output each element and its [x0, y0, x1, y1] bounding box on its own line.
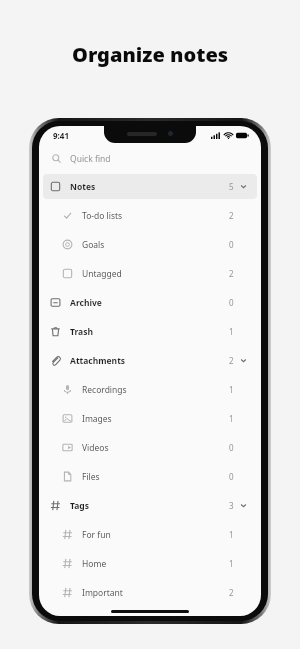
staticText: Archive [70, 297, 102, 309]
button[interactable]: Tags [43, 493, 257, 518]
staticText: 2 [229, 268, 234, 279]
staticText: Attachments [70, 355, 126, 367]
button[interactable]: Recordings [43, 377, 257, 402]
staticText: Important [82, 587, 123, 599]
staticText: Home [82, 558, 107, 570]
staticText: 1 [229, 558, 234, 569]
staticText: 0 [229, 297, 234, 308]
staticText: Images [82, 413, 112, 425]
staticText: 1 [229, 384, 234, 395]
staticText: 5 [229, 181, 234, 192]
staticText: Organize notes [72, 41, 229, 68]
staticText: 1 [229, 529, 234, 540]
button[interactable]: Untagged [43, 261, 257, 286]
button[interactable]: Attachments [43, 348, 257, 373]
button[interactable]: Important [43, 580, 257, 605]
staticText: 1 [229, 326, 234, 337]
button[interactable]: Trash [43, 319, 257, 344]
button[interactable]: Videos [43, 435, 257, 460]
staticText: 2 [229, 210, 234, 221]
staticText: To-do lists [82, 210, 123, 222]
button[interactable]: Images [43, 406, 257, 431]
staticText: Quick find [70, 153, 111, 165]
button[interactable]: Archive [43, 290, 257, 315]
staticText: Goals [82, 239, 105, 251]
staticText: 3 [229, 500, 234, 511]
button[interactable]: To-do lists [43, 203, 257, 228]
staticText: 1 [229, 413, 234, 424]
button[interactable]: Home [43, 551, 257, 576]
staticText: Files [82, 471, 100, 483]
staticText: Recordings [82, 384, 127, 396]
button[interactable]: Notes [43, 174, 257, 199]
button[interactable]: Files [43, 464, 257, 489]
staticText: Untagged [82, 268, 122, 280]
staticText: Trash [70, 326, 93, 338]
staticText: 0 [229, 442, 234, 453]
staticText: 2 [229, 587, 234, 598]
staticText: Notes [70, 181, 96, 193]
button[interactable]: For fun [43, 522, 257, 547]
staticText: 0 [229, 239, 234, 250]
staticText: Tags [70, 500, 89, 512]
staticText: Videos [82, 442, 109, 454]
button[interactable]: Quick find search [39, 145, 261, 172]
staticText: 9:41 [53, 130, 69, 141]
staticText: For fun [82, 529, 111, 541]
staticText: 2 [229, 355, 234, 366]
staticText: 0 [229, 471, 234, 482]
button[interactable]: Goals [43, 232, 257, 257]
